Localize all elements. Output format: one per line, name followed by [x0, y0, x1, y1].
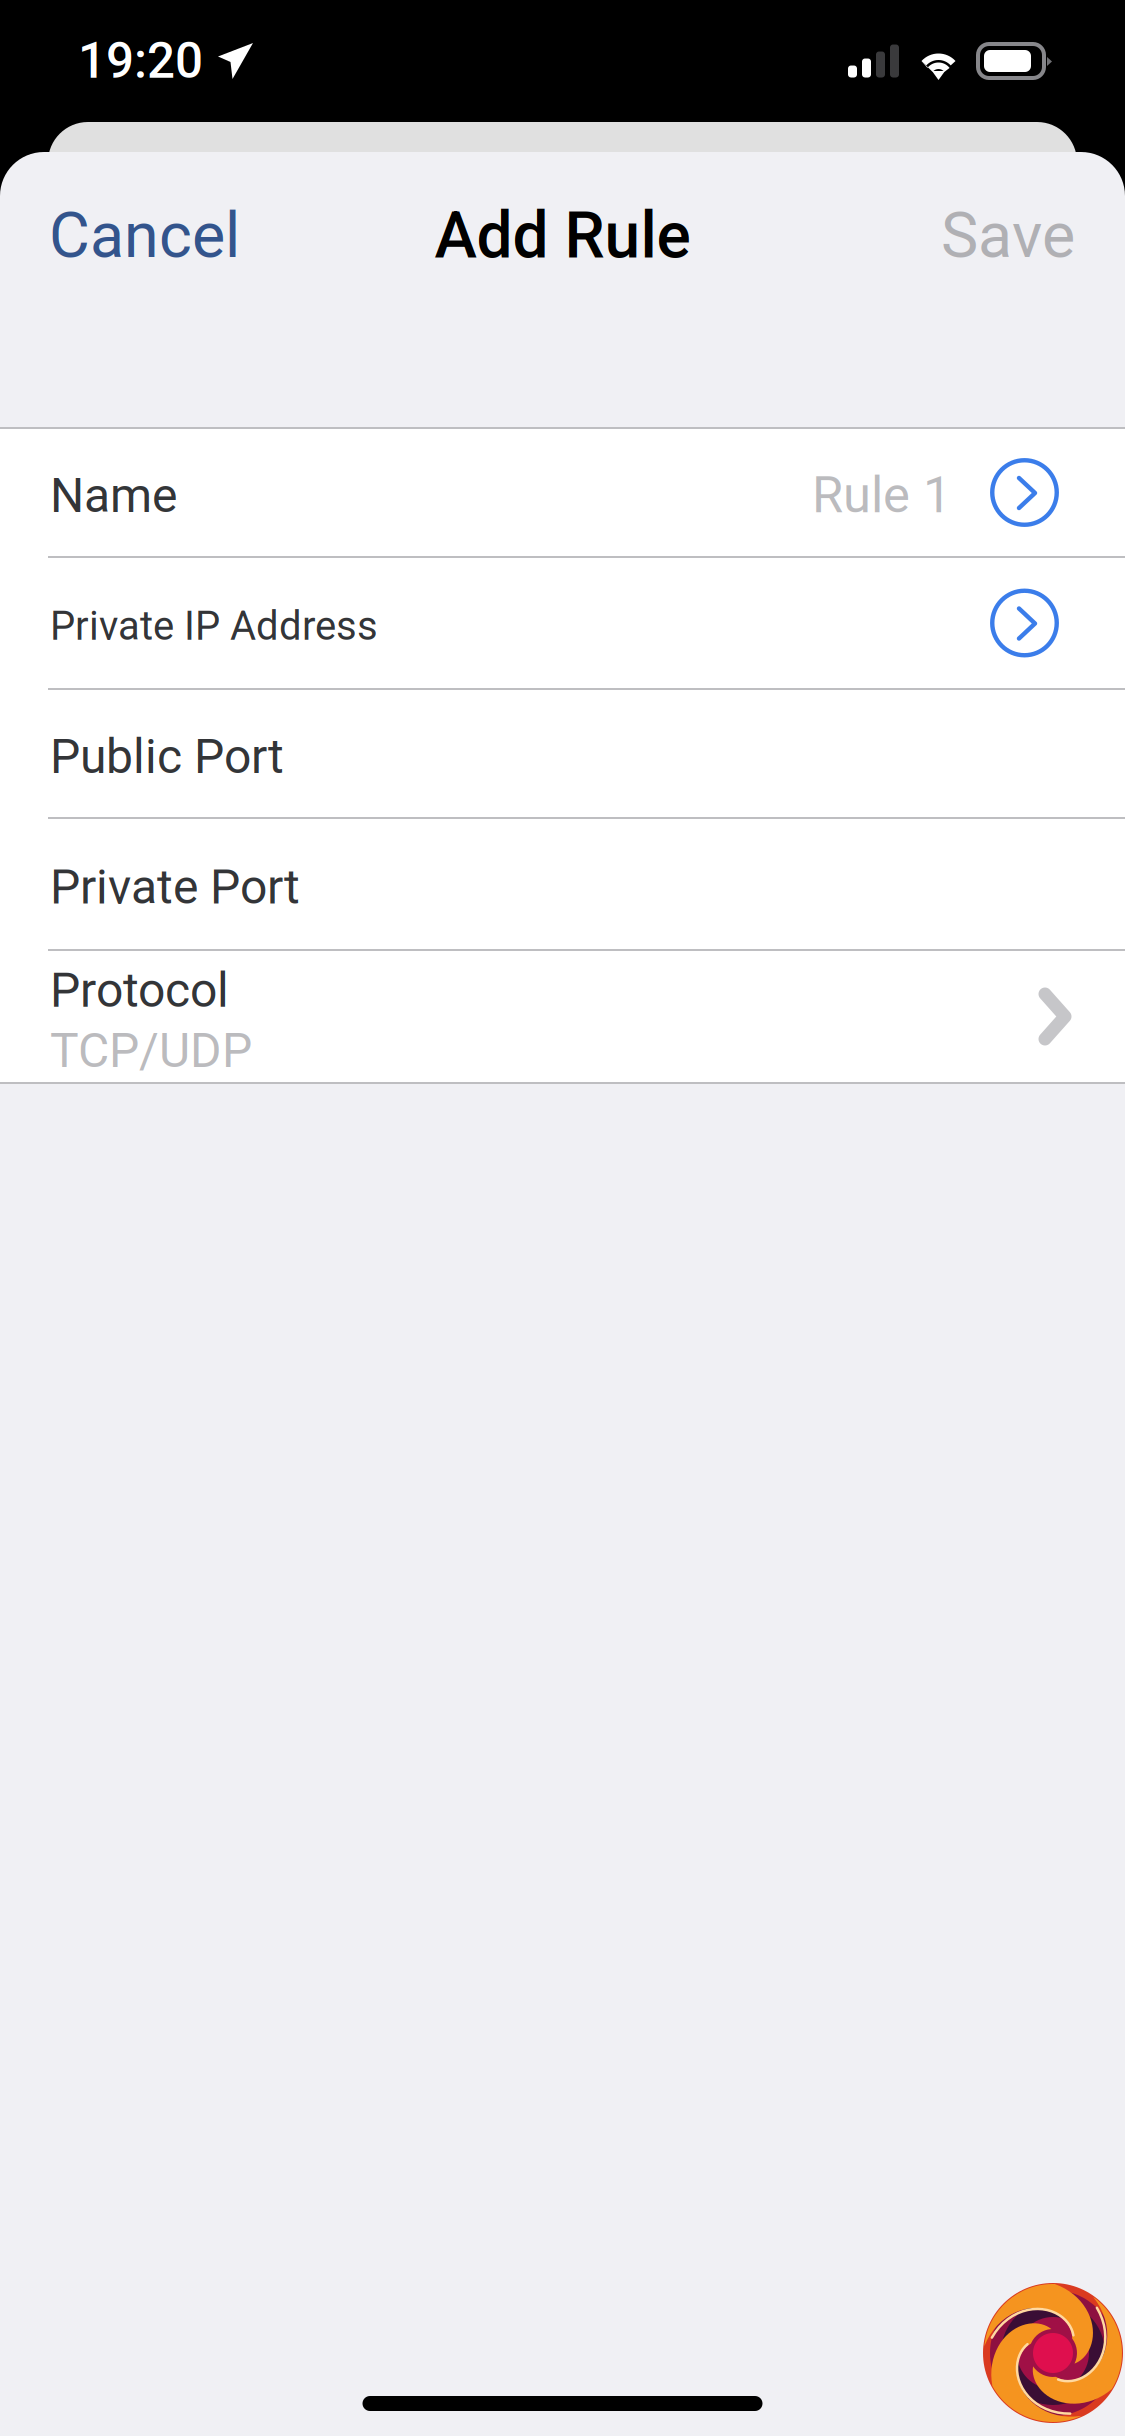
- button[interactable]: Save: [917, 152, 1125, 319]
- staticText: Rule 1: [812, 465, 951, 525]
- staticText: Public Port: [50, 728, 284, 785]
- staticText: Private Port: [50, 859, 300, 915]
- button[interactable]: Private IP Address: [0, 558, 1125, 688]
- staticText: Private IP Address: [50, 603, 378, 649]
- staticText: Save: [941, 199, 1075, 272]
- staticText: Cancel: [49, 199, 240, 272]
- button[interactable]: Protocol: [0, 951, 1125, 1082]
- button[interactable]: Public Port: [0, 690, 1125, 817]
- staticText: Protocol: [50, 962, 229, 1018]
- staticText: TCP/UDP: [50, 1022, 252, 1079]
- button[interactable]: Name: [0, 429, 1125, 556]
- button[interactable]: Cancel: [0, 152, 264, 319]
- staticText: Add Rule: [434, 198, 690, 273]
- button[interactable]: Private Port: [0, 819, 1125, 949]
- staticText: 19:20: [78, 32, 203, 90]
- staticText: Name: [50, 467, 177, 524]
